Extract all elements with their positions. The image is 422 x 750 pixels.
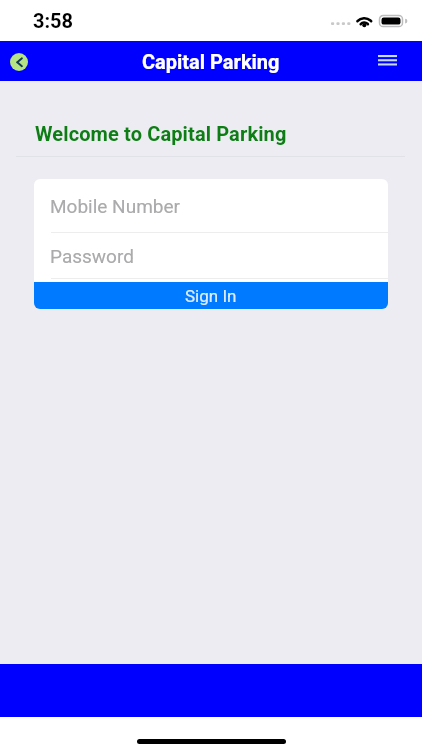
staticText: Password (50, 245, 134, 267)
staticText: Capital Parking (142, 50, 280, 73)
button[interactable]: Back (10, 53, 28, 71)
button[interactable]: Mobile Number (34, 179, 388, 232)
staticText: Mobile Number (50, 195, 180, 217)
staticText: 3:58 (33, 9, 74, 32)
button[interactable]: Sign In (34, 282, 388, 309)
staticText: Welcome to Capital Parking (35, 122, 287, 145)
button[interactable]: Password (34, 233, 388, 278)
staticText: Sign In (185, 286, 237, 306)
button[interactable]: Menu (374, 49, 400, 73)
